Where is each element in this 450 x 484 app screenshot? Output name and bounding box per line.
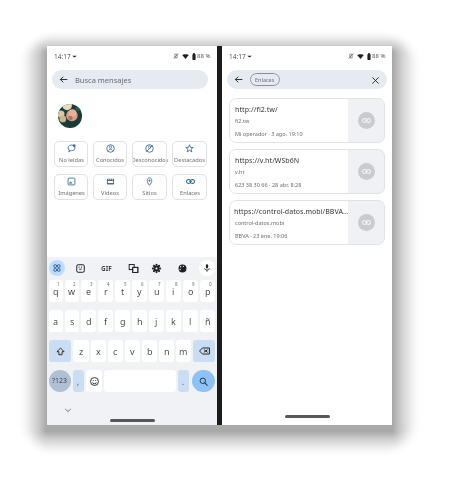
staticText: l <box>189 315 192 327</box>
button[interactable]: 5 <box>115 280 130 302</box>
staticText: 0 <box>209 281 212 287</box>
button[interactable]: s <box>65 310 79 332</box>
button[interactable]: Vídeos <box>93 174 127 200</box>
button[interactable]: Stickers <box>72 260 88 276</box>
staticText: g <box>120 315 126 327</box>
button[interactable]: No leídas <box>54 141 88 167</box>
button[interactable]: https://control-datos.mobi/BBVA… <box>229 200 385 245</box>
button[interactable]: ñ <box>200 310 215 332</box>
button[interactable]: 0 <box>200 280 215 302</box>
button[interactable]: f <box>98 310 113 332</box>
staticText: 14:17 <box>229 52 246 61</box>
staticText: s <box>70 315 75 327</box>
staticText: Desconocidos <box>131 156 169 164</box>
button[interactable]: Imágenes <box>54 174 88 200</box>
button[interactable]: Enlaces <box>250 73 280 86</box>
staticText: v.ht <box>235 168 245 175</box>
staticText: 6 <box>141 281 144 287</box>
other: Back <box>234 75 243 84</box>
staticText: Busca mensajes <box>75 75 132 85</box>
button[interactable]: 2 <box>65 280 79 302</box>
button[interactable]: Voice input <box>199 260 215 276</box>
button[interactable]: z <box>73 340 89 362</box>
button[interactable]: Back <box>227 70 387 89</box>
button[interactable]: 6 <box>132 280 147 302</box>
button[interactable]: Search <box>192 370 215 392</box>
button[interactable]: Apps <box>49 260 65 276</box>
staticText: https://v.ht/WSb6N <box>235 156 300 166</box>
button[interactable]: 1 <box>49 280 63 302</box>
staticText: 2 <box>73 281 76 287</box>
button[interactable]: 8 <box>166 280 181 302</box>
button[interactable]: c <box>108 340 123 362</box>
staticText: x <box>96 345 101 357</box>
staticText: 9 <box>192 281 195 287</box>
staticText: u <box>154 285 160 297</box>
button[interactable]: Themes <box>174 260 190 276</box>
staticText: Mi operador · 3 ago, 19:10 <box>235 130 303 137</box>
button[interactable]: GIF <box>98 260 114 276</box>
button[interactable]: ?123 <box>49 370 71 392</box>
staticText: 4 <box>107 281 110 287</box>
button[interactable]: Destacados <box>172 141 207 167</box>
staticText: h <box>137 315 143 327</box>
button[interactable]: Back <box>52 70 208 89</box>
button[interactable]: Sitios <box>132 174 167 200</box>
button[interactable]: k <box>166 310 181 332</box>
staticText: q <box>53 285 59 297</box>
staticText: 1 <box>57 281 60 287</box>
button[interactable]: 9 <box>183 280 198 302</box>
button[interactable]: Translate <box>125 260 141 276</box>
button[interactable]: n <box>159 340 174 362</box>
button[interactable]: Close <box>368 73 382 87</box>
button[interactable]: Emoji <box>86 370 102 392</box>
button[interactable]: http://fi2.tw/ <box>229 98 385 143</box>
staticText: j <box>155 315 158 327</box>
staticText: BBVA · 23 ene, 19:06 <box>235 232 288 239</box>
button[interactable]: Hide keyboard <box>61 403 75 417</box>
staticText: y <box>137 285 142 297</box>
button[interactable]: x <box>91 340 106 362</box>
staticText: Enlaces <box>180 189 200 197</box>
button[interactable]: . <box>178 370 189 392</box>
staticText: ?123 <box>52 376 68 386</box>
staticText: b <box>147 345 153 357</box>
button[interactable]: h <box>132 310 147 332</box>
button[interactable]: g <box>115 310 130 332</box>
staticText: f <box>104 315 108 327</box>
button[interactable]: 7 <box>149 280 164 302</box>
staticText: 88 % <box>197 52 211 60</box>
button[interactable]: 4 <box>98 280 113 302</box>
button[interactable]: a <box>49 310 63 332</box>
button[interactable]: Profile <box>58 104 82 128</box>
staticText: c <box>113 345 118 357</box>
staticText: control-datos.mobi <box>235 219 285 226</box>
staticText: 88 % <box>372 52 386 60</box>
button[interactable]: Conocidos <box>93 141 127 167</box>
button[interactable]: Backspace <box>193 340 215 362</box>
staticText: Enlaces <box>255 76 275 83</box>
staticText: Imágenes <box>58 189 85 197</box>
staticText: ñ <box>205 315 211 327</box>
staticText: 8 <box>175 281 178 287</box>
staticText: i <box>172 285 175 297</box>
button[interactable]: b <box>142 340 157 362</box>
button[interactable]: https://v.ht/WSb6N <box>229 149 385 194</box>
button[interactable]: 3 <box>81 280 96 302</box>
button[interactable]: Enlaces <box>172 174 207 200</box>
staticText: m <box>179 345 188 357</box>
staticText: z <box>79 345 84 357</box>
button[interactable]: , <box>73 370 84 392</box>
button[interactable]: Desconocidos <box>132 141 167 167</box>
button[interactable]: j <box>149 310 164 332</box>
staticText: fi2.tw <box>235 117 250 124</box>
staticText: 7 <box>158 281 161 287</box>
button[interactable]: m <box>176 340 191 362</box>
button[interactable]: l <box>183 310 198 332</box>
button[interactable]: v <box>125 340 140 362</box>
button[interactable]: d <box>81 310 96 332</box>
staticText: n <box>164 345 170 357</box>
button[interactable]: Settings <box>148 260 164 276</box>
button[interactable]: Shift <box>49 340 71 362</box>
